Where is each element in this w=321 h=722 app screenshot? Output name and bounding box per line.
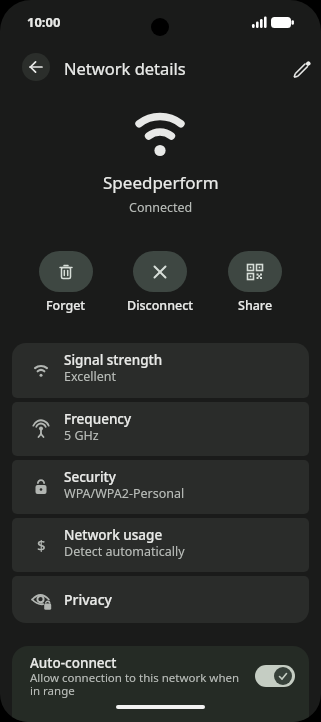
button[interactable] (228, 251, 282, 292)
staticText: Network details (64, 57, 186, 79)
staticText: Disconnect (127, 297, 194, 314)
staticText: Forget (46, 297, 86, 314)
staticText: Auto-connect (30, 654, 117, 672)
staticText: Privacy (64, 590, 112, 609)
button[interactable] (133, 251, 187, 292)
staticText: Detect automatically (64, 543, 185, 560)
staticText: Share (238, 297, 273, 314)
button[interactable] (288, 55, 314, 81)
staticText: $ (37, 535, 46, 555)
button[interactable]: Security (12, 460, 309, 514)
staticText: Network usage (64, 526, 163, 544)
staticText: Signal strength (64, 351, 163, 369)
staticText: Excellent (64, 368, 117, 385)
staticText: Frequency (64, 410, 132, 428)
button[interactable]: Auto-connect (12, 646, 309, 722)
staticText: Speedperform (103, 171, 219, 194)
staticText: 5 GHz (64, 427, 99, 444)
button[interactable]: Frequency (12, 402, 309, 456)
button[interactable]: Signal strength (12, 343, 309, 398)
button[interactable] (22, 53, 50, 81)
button[interactable] (255, 665, 295, 687)
staticText: Connected (129, 199, 193, 216)
staticText: 10:00 (27, 13, 61, 31)
button[interactable]: Privacy (12, 576, 309, 623)
button[interactable] (39, 251, 93, 292)
staticText: WPA/WPA2-Personal (64, 485, 185, 502)
button[interactable]: $ (12, 518, 309, 572)
staticText: Allow connection to this network when in… (30, 670, 240, 699)
staticText: Security (64, 468, 116, 486)
